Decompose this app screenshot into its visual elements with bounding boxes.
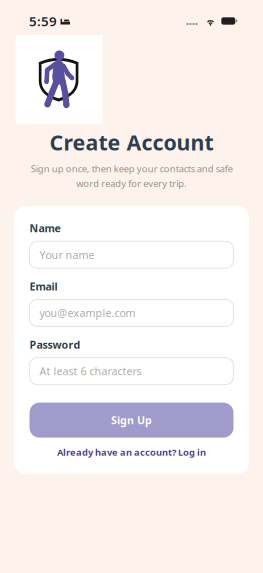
button[interactable]: Your name (29, 241, 233, 268)
staticText: Name (29, 221, 60, 235)
button[interactable]: Sign Up (29, 403, 233, 438)
button[interactable]: you@example.com (29, 299, 233, 326)
staticText: Create Account (49, 128, 213, 156)
staticText: Password (29, 337, 80, 352)
staticText: you@example.com (39, 306, 135, 320)
staticText: Sign up once, then keep your contacts an… (30, 162, 232, 190)
button[interactable]: At least 6 characters (29, 358, 233, 385)
button[interactable]: Already have an account? Log in (29, 446, 233, 459)
staticText: 5:59 (29, 12, 57, 30)
staticText: Already have an account? Log in (57, 446, 206, 458)
staticText: Email (29, 279, 57, 293)
staticText: Your name (39, 248, 94, 262)
staticText: Sign Up (111, 413, 152, 427)
staticText: At least 6 characters (39, 364, 141, 378)
